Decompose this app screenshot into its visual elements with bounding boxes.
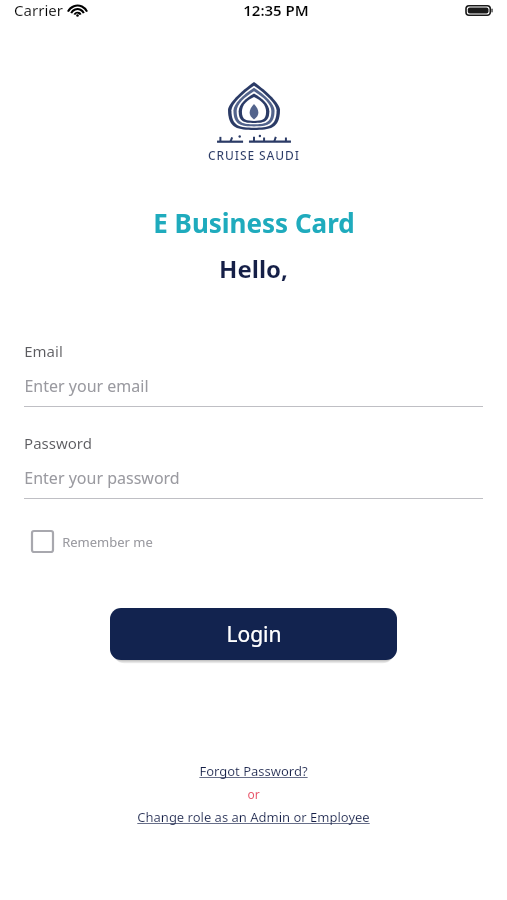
button[interactable]: Change role as an Admin or Employee	[131, 806, 376, 828]
button[interactable]: Enter your email	[24, 375, 483, 407]
staticText: E Business Card	[153, 205, 355, 240]
button[interactable]: Login	[110, 608, 397, 660]
other: Cruise Saudi logo	[228, 82, 280, 130]
staticText: Email	[24, 341, 63, 361]
staticText: Carrier	[14, 0, 63, 20]
staticText: Password	[24, 433, 92, 453]
button[interactable]: Remember me	[30, 527, 155, 556]
staticText: Enter your password	[24, 467, 180, 489]
staticText: Remember me	[62, 533, 153, 551]
staticText: Login	[226, 620, 282, 649]
staticText: Hello,	[219, 252, 288, 285]
staticText: Change role as an Admin or Employee	[137, 808, 370, 826]
button[interactable]: Forgot Password?	[193, 760, 314, 782]
staticText: 12:35 PM	[243, 0, 309, 20]
staticText: CRUISE SAUDI	[208, 147, 300, 163]
staticText: or	[247, 786, 260, 802]
staticText: Forgot Password?	[199, 762, 308, 780]
button[interactable]: Enter your password	[24, 467, 483, 499]
staticText: Enter your email	[24, 375, 149, 397]
